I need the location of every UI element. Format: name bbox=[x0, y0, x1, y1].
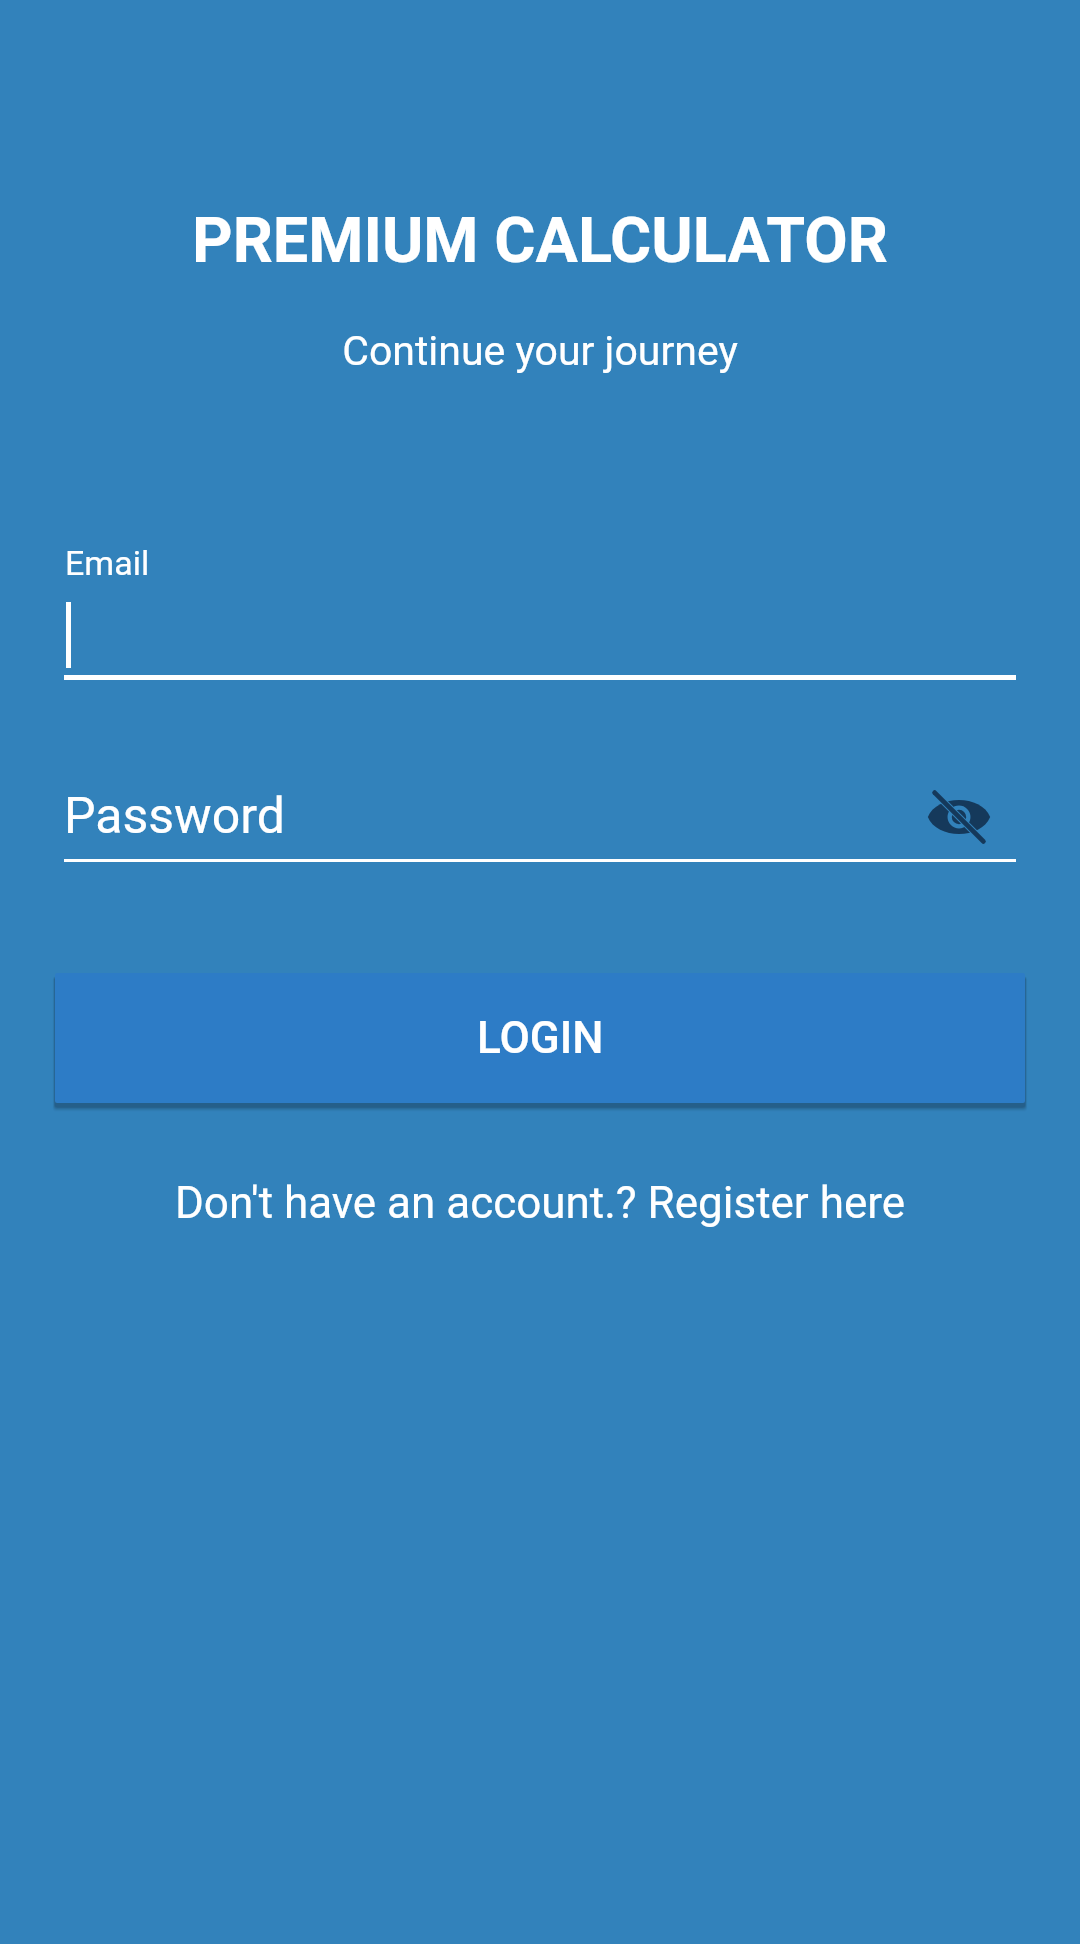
button[interactable]: Don't have an account.? Register here bbox=[0, 1177, 1080, 1229]
button[interactable]: LOGIN bbox=[55, 973, 1025, 1103]
staticText: Password bbox=[64, 787, 285, 846]
staticText: LOGIN bbox=[477, 1012, 604, 1064]
staticText: Continue your journey bbox=[0, 327, 1080, 375]
button[interactable]: Password bbox=[64, 787, 1016, 862]
button[interactable]: Show password bbox=[891, 749, 1027, 885]
staticText: Email bbox=[65, 543, 150, 583]
button[interactable]: Email bbox=[64, 543, 1016, 681]
staticText: PREMIUM CALCULATOR bbox=[0, 204, 1080, 278]
